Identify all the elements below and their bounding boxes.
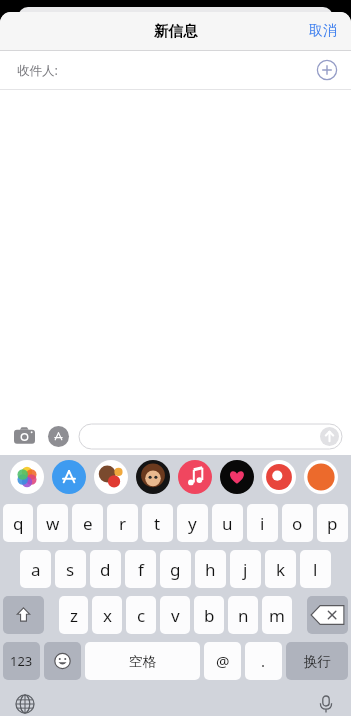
button[interactable]: 123	[3, 642, 40, 680]
button[interactable]: Dictation	[310, 688, 342, 716]
button[interactable]: r	[107, 504, 138, 542]
staticText: l	[313, 558, 318, 581]
button[interactable]: App	[136, 460, 170, 494]
button[interactable]: App Store	[43, 421, 73, 451]
button[interactable]: 收件人:	[0, 51, 351, 89]
button[interactable]: c	[126, 596, 156, 634]
staticText: 收件人:	[17, 62, 58, 79]
staticText: w	[46, 512, 60, 535]
staticText: @	[216, 651, 230, 671]
button[interactable]: App	[52, 460, 86, 494]
staticText: 新信息	[154, 22, 198, 40]
button[interactable]: 换行	[286, 642, 348, 680]
button[interactable]: Shift	[3, 596, 44, 634]
button[interactable]: d	[90, 550, 121, 588]
button[interactable]: Send	[320, 427, 339, 446]
staticText: j	[243, 558, 248, 581]
staticText: c	[137, 604, 146, 627]
button[interactable]: Switch keyboard	[9, 688, 41, 716]
button[interactable]: .	[245, 642, 282, 680]
button[interactable]: 取消	[303, 16, 343, 46]
staticText: 取消	[309, 22, 337, 40]
button[interactable]: i	[247, 504, 278, 542]
staticText: o	[292, 512, 303, 535]
staticText: r	[119, 512, 127, 535]
button[interactable]: s	[55, 550, 86, 588]
staticText: e	[83, 512, 93, 535]
button[interactable]: App	[10, 460, 44, 494]
button[interactable]: a	[20, 550, 51, 588]
staticText: t	[154, 512, 161, 535]
button[interactable]: g	[160, 550, 191, 588]
button[interactable]: App	[178, 460, 212, 494]
button[interactable]: 空格	[85, 642, 200, 680]
button[interactable]: e	[72, 504, 103, 542]
button[interactable]: p	[317, 504, 348, 542]
staticText: 换行	[304, 653, 331, 670]
staticText: v	[171, 604, 180, 627]
button[interactable]: y	[177, 504, 208, 542]
staticText: k	[276, 558, 286, 581]
button[interactable]: Camera	[9, 421, 39, 451]
staticText: x	[103, 604, 112, 627]
button[interactable]: q	[3, 504, 33, 542]
staticText: .	[261, 651, 266, 671]
button[interactable]: v	[160, 596, 190, 634]
button[interactable]: App	[94, 460, 128, 494]
button[interactable]: u	[212, 504, 243, 542]
button[interactable]: App	[220, 460, 254, 494]
staticText: 123	[10, 652, 33, 670]
staticText: m	[269, 604, 285, 627]
staticText: y	[188, 512, 197, 535]
staticText: q	[13, 512, 24, 535]
staticText: z	[70, 604, 78, 627]
staticText: n	[238, 604, 249, 627]
staticText: h	[205, 558, 216, 581]
button[interactable]: App	[262, 460, 296, 494]
button[interactable]: o	[282, 504, 313, 542]
staticText: a	[31, 558, 41, 581]
staticText: 空格	[129, 653, 156, 670]
button[interactable]: z	[59, 596, 88, 634]
button[interactable]: m	[262, 596, 292, 634]
staticText: i	[260, 512, 265, 535]
staticText: g	[170, 558, 181, 581]
button[interactable]: n	[228, 596, 258, 634]
button[interactable]: f	[125, 550, 156, 588]
button[interactable]: Backspace	[307, 596, 348, 634]
staticText: u	[222, 512, 233, 535]
button[interactable]: h	[195, 550, 226, 588]
button[interactable]: Send	[79, 424, 342, 449]
button[interactable]: x	[92, 596, 122, 634]
button[interactable]: @	[204, 642, 241, 680]
button[interactable]: k	[265, 550, 296, 588]
button[interactable]: l	[300, 550, 331, 588]
staticText: d	[100, 558, 111, 581]
button[interactable]: Emoji	[44, 642, 81, 680]
button[interactable]: w	[37, 504, 68, 542]
button[interactable]: j	[230, 550, 261, 588]
staticText: s	[66, 558, 75, 581]
button[interactable]: t	[142, 504, 173, 542]
staticText: f	[138, 558, 144, 581]
button[interactable]: App	[304, 460, 338, 494]
staticText: p	[327, 512, 338, 535]
button[interactable]: b	[194, 596, 224, 634]
button[interactable]: Add recipient	[316, 59, 338, 81]
staticText: b	[204, 604, 215, 627]
